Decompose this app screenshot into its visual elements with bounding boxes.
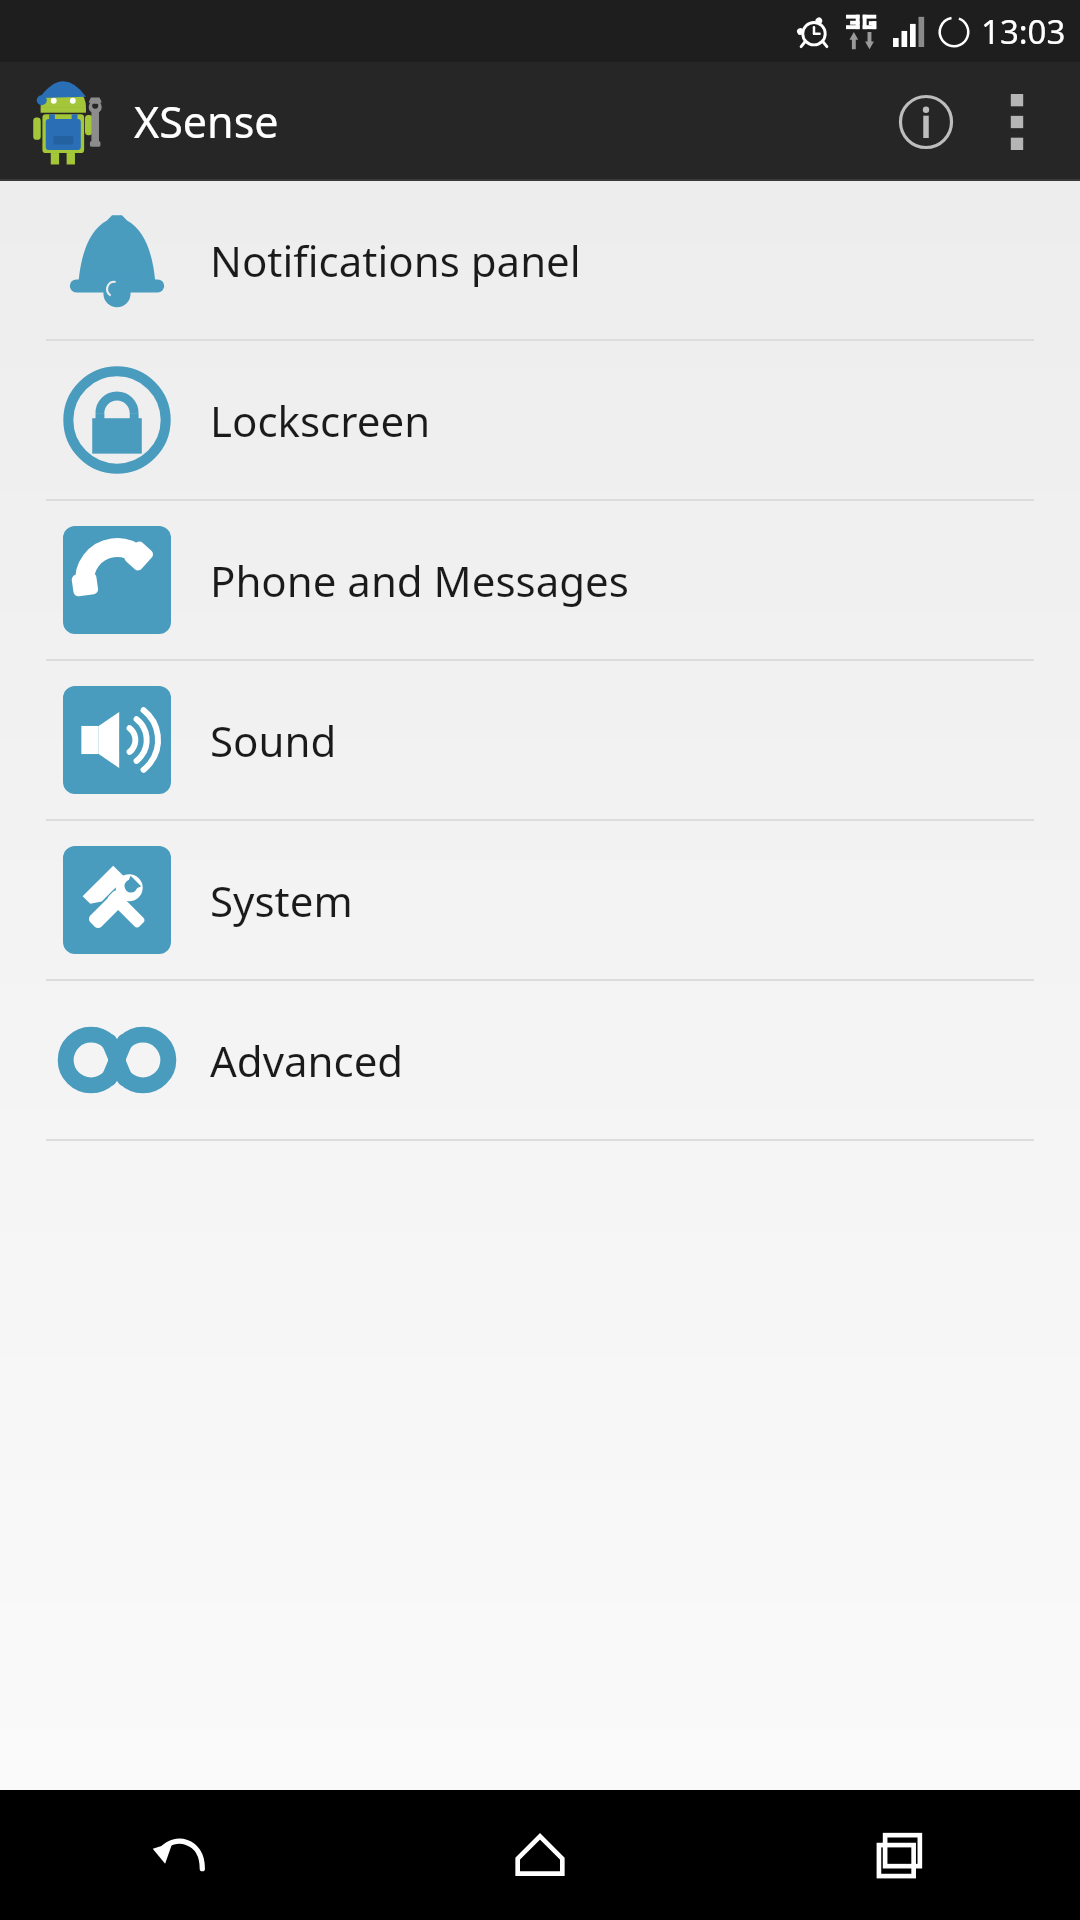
button[interactable]: System [0, 821, 1080, 979]
button[interactable]: Notifications panel [0, 181, 1080, 339]
button[interactable]: Back [0, 1790, 360, 1920]
button[interactable]: Lockscreen [0, 341, 1080, 499]
staticText: Notifications panel [210, 232, 581, 289]
staticText: Phone and Messages [210, 552, 629, 609]
button[interactable]: Sound [0, 661, 1080, 819]
button[interactable]: Advanced [0, 981, 1080, 1139]
staticText: System [210, 872, 353, 929]
staticText: Sound [210, 712, 337, 769]
button[interactable]: More options [974, 79, 1060, 165]
staticText: Advanced [210, 1032, 404, 1089]
staticText: 13:03 [981, 9, 1066, 54]
button[interactable]: Home [360, 1790, 720, 1920]
button[interactable]: Recent apps [720, 1790, 1080, 1920]
staticText: Lockscreen [210, 392, 431, 449]
staticText: XSense [134, 92, 279, 151]
button[interactable]: Info [878, 74, 974, 170]
button[interactable]: Phone and Messages [0, 501, 1080, 659]
